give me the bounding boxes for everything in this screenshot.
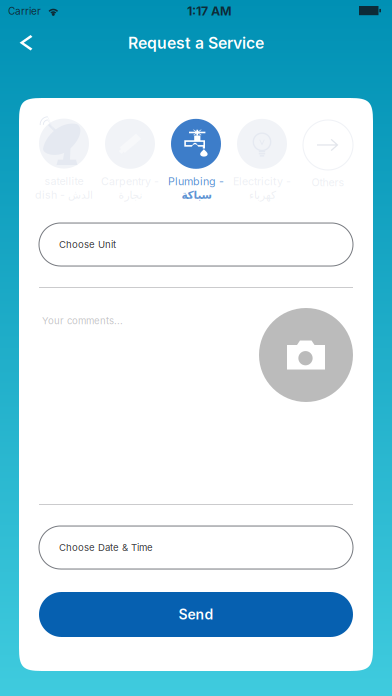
- button[interactable]: Choose Date & Time: [39, 526, 353, 569]
- button[interactable]: Add photo: [259, 308, 353, 402]
- staticText: Electricity -: [233, 175, 291, 188]
- staticText: نجارة: [118, 189, 142, 201]
- button[interactable]: Carpentry -: [97, 120, 163, 208]
- staticText: سباكة: [181, 189, 211, 201]
- button[interactable]: satellite: [31, 120, 97, 208]
- button[interactable]: Electricity -: [229, 120, 295, 208]
- button[interactable]: Send: [39, 592, 353, 637]
- staticText: Request a Service: [128, 33, 264, 52]
- staticText: 1:17 AM: [187, 3, 232, 18]
- button[interactable]: Plumbing -: [163, 120, 229, 208]
- button[interactable]: Choose Unit: [39, 223, 353, 266]
- staticText: Plumbing -: [168, 175, 224, 188]
- button[interactable]: Others: [295, 120, 361, 208]
- staticText: Your comments...: [42, 315, 123, 327]
- staticText: satellite: [44, 175, 83, 187]
- button[interactable]: Back: [5, 22, 47, 64]
- staticText: Carrier: [8, 5, 41, 17]
- staticText: Choose Date & Time: [59, 542, 153, 553]
- staticText: Choose Unit: [59, 239, 116, 250]
- staticText: Others: [311, 176, 344, 189]
- staticText: Send: [178, 606, 213, 623]
- staticText: كهرباء: [248, 189, 275, 201]
- staticText: Carpentry -: [101, 175, 159, 188]
- staticText: dish - الدش: [35, 188, 93, 201]
